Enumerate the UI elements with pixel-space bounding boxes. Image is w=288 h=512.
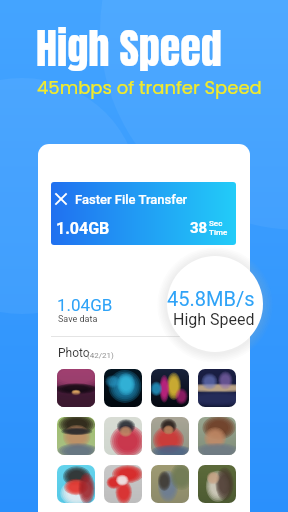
staticText: Sec [209, 219, 223, 228]
button[interactable]: Close [51, 182, 236, 245]
button[interactable] [57, 465, 95, 503]
button[interactable] [104, 369, 142, 407]
staticText: 45mbps of tranfer Speed [37, 75, 262, 100]
button[interactable] [198, 465, 236, 503]
staticText: Photo [58, 346, 90, 360]
button[interactable] [198, 417, 236, 455]
button[interactable] [151, 369, 189, 407]
button[interactable] [104, 465, 142, 503]
staticText: High Speed [173, 310, 255, 329]
button[interactable] [151, 417, 189, 455]
button[interactable]: 45.8MB/s [167, 256, 263, 352]
staticText: High Speed [36, 17, 222, 80]
other: Close [56, 194, 66, 204]
staticText: Time [209, 228, 228, 237]
button[interactable] [151, 465, 189, 503]
staticText: 1.04GB [57, 295, 113, 315]
staticText: 45.8MB/s [167, 287, 255, 310]
staticText: Faster File Transfer [75, 192, 188, 207]
staticText: Save data [58, 314, 98, 325]
button[interactable] [57, 369, 95, 407]
staticText: 38 [190, 219, 208, 237]
staticText: (42/21) [87, 351, 114, 360]
staticText: 1.04GB [56, 219, 110, 238]
button[interactable] [57, 417, 95, 455]
button[interactable] [198, 369, 236, 407]
button[interactable] [104, 417, 142, 455]
